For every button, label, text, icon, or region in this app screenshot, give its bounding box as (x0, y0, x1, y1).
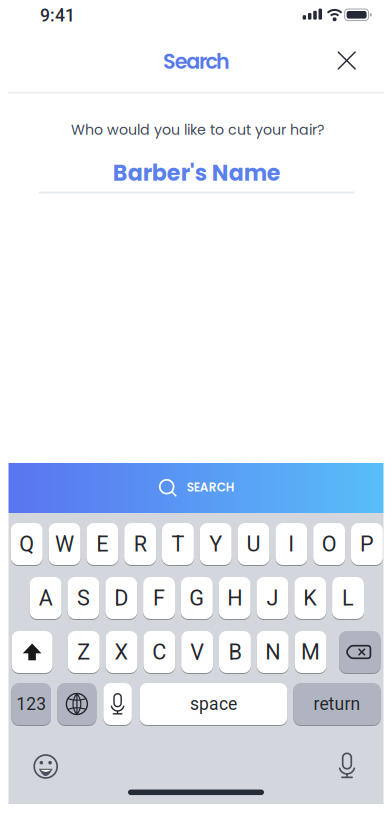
staticText: S (77, 585, 90, 611)
staticText: Y (209, 531, 222, 557)
button[interactable]: K (294, 576, 326, 619)
button[interactable]: R (124, 522, 156, 565)
button[interactable]: D (105, 576, 137, 619)
button[interactable]: I (275, 522, 307, 565)
staticText: h (216, 47, 230, 76)
button[interactable]: O (313, 522, 345, 565)
staticText: C (152, 639, 166, 665)
staticText: N (265, 639, 280, 665)
button[interactable] (57, 682, 96, 725)
button[interactable]: G (181, 576, 213, 619)
button[interactable]: 123 (11, 682, 51, 725)
button[interactable]: B (219, 630, 251, 673)
button[interactable]: U (238, 522, 269, 565)
button[interactable]: Barber's Name (39, 142, 355, 200)
staticText: U (246, 531, 260, 557)
staticText: D (114, 585, 128, 611)
staticText: B (228, 639, 241, 665)
staticText: V (190, 639, 204, 665)
button[interactable]: J (256, 576, 288, 619)
button[interactable] (103, 682, 132, 725)
staticText: O (322, 531, 337, 557)
staticText: Who would you like to cut your hair? (71, 120, 324, 140)
button[interactable]: M (295, 630, 326, 673)
staticText: H (227, 585, 242, 611)
staticText: T (171, 531, 184, 557)
staticText: R (134, 531, 147, 557)
button[interactable] (12, 630, 53, 673)
staticText: a (186, 47, 200, 76)
staticText: Z (77, 639, 90, 665)
button[interactable]: P (351, 522, 383, 565)
staticText: r (199, 47, 207, 76)
staticText: X (114, 639, 128, 665)
button[interactable]: Q (11, 522, 43, 565)
staticText: G (189, 585, 204, 611)
staticText: Barber's Name (113, 157, 281, 188)
button[interactable]: X (106, 630, 137, 673)
button[interactable]: space (140, 682, 287, 725)
staticText: return (313, 694, 360, 714)
staticText: S (163, 47, 176, 76)
button[interactable]: E (86, 522, 118, 565)
staticText: J (266, 585, 278, 611)
button[interactable]: F (143, 576, 175, 619)
staticText: M (301, 639, 320, 665)
button[interactable] (325, 744, 369, 788)
button[interactable]: Z (68, 630, 100, 673)
staticText: A (39, 585, 53, 611)
button[interactable] (327, 40, 367, 80)
staticText: e (175, 47, 188, 76)
button[interactable]: SEARCH (8, 463, 383, 513)
button[interactable]: H (219, 576, 251, 619)
staticText: Q (19, 531, 34, 557)
button[interactable] (339, 630, 381, 673)
staticText: E (96, 531, 108, 557)
staticText: I (288, 531, 294, 557)
staticText: 9:41 (40, 5, 75, 26)
button[interactable]: S (67, 576, 99, 619)
staticText: c (205, 47, 217, 76)
staticText: F (153, 585, 165, 611)
staticText: space (190, 694, 237, 714)
button[interactable]: T (162, 522, 194, 565)
button[interactable]: N (257, 630, 289, 673)
staticText: P (360, 531, 374, 557)
button[interactable]: W (49, 522, 80, 565)
staticText: K (303, 585, 317, 611)
button[interactable] (24, 744, 68, 788)
staticText: L (342, 585, 354, 611)
button[interactable]: return (293, 682, 381, 725)
button[interactable]: V (181, 630, 213, 673)
button[interactable]: C (143, 630, 175, 673)
staticText: 123 (16, 694, 46, 714)
button[interactable]: Y (200, 522, 232, 565)
button[interactable]: A (30, 576, 62, 619)
staticText: W (55, 531, 74, 557)
button[interactable]: L (332, 576, 364, 619)
staticText: SEARCH (187, 479, 235, 496)
